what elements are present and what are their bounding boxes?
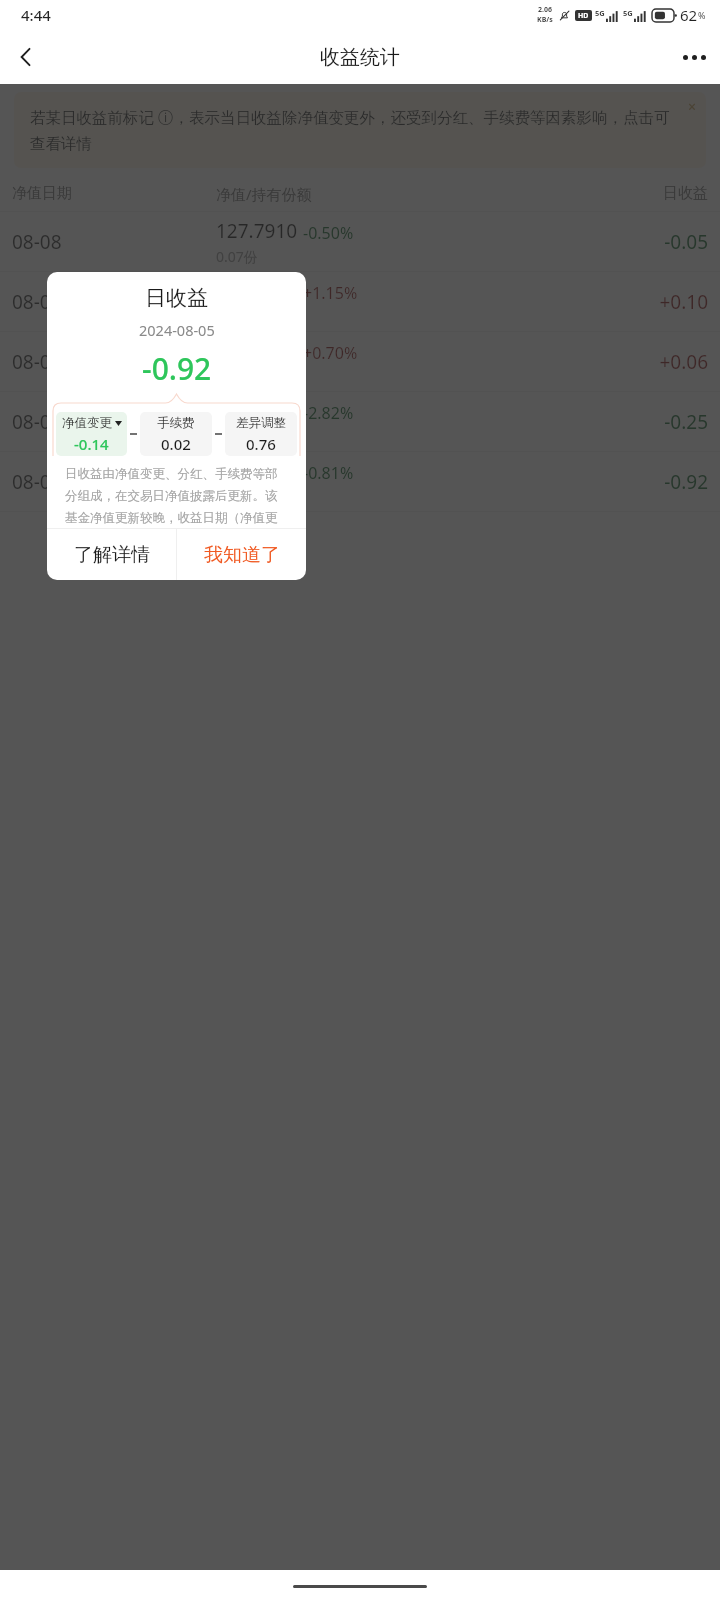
staticText: 净值/持有份额 xyxy=(216,184,503,204)
staticText: 日收益 xyxy=(145,285,208,311)
staticText: 日收益由净值变更、分红、手续费等部分组成，在交易日净值披露后更新。该基金净值更新… xyxy=(65,466,288,528)
staticText: -0.81% xyxy=(303,462,354,484)
staticText: % xyxy=(698,9,706,21)
button[interactable]: 08-02 xyxy=(0,452,720,511)
button[interactable]: 了解详情 xyxy=(47,529,176,580)
staticText: 若某日收益前标记 ⓘ，表示当日收益除净值变更外，还受到分红、手续费等因素影响，点… xyxy=(30,106,684,154)
staticText: 08-02 xyxy=(12,469,216,495)
staticText: 08-06 xyxy=(12,349,216,375)
staticText: 08-08 xyxy=(12,229,216,255)
button[interactable]: 08-07 xyxy=(0,272,720,331)
staticText: 0.07份 xyxy=(216,487,258,506)
staticText: 0.07份 xyxy=(216,247,258,266)
staticText: 净值日期 xyxy=(12,184,216,203)
staticText: 2.06 xyxy=(538,5,552,15)
staticText: 0.07份 xyxy=(216,427,258,446)
staticText: × xyxy=(688,97,697,116)
button[interactable]: Back xyxy=(0,31,52,83)
button[interactable]: 若某日收益前标记 ⓘ，表示当日收益除净值变更外，还受到分红、手续费等因素影响，点… xyxy=(14,92,706,168)
staticText: 日收益 xyxy=(503,184,708,203)
staticText: +0.06 xyxy=(503,349,708,375)
staticText: 了解详情 xyxy=(74,543,150,567)
staticText: -0.14 xyxy=(74,434,109,454)
staticText: 5G xyxy=(623,8,633,18)
staticText: -0.50% xyxy=(303,222,354,244)
button[interactable]: 差异调整 xyxy=(225,412,297,456)
staticText: -0.92 xyxy=(142,348,212,389)
staticText: +0.10 xyxy=(503,289,708,315)
staticText: 0.76 xyxy=(246,434,276,454)
staticText: -0.92 xyxy=(503,469,708,495)
staticText: 127.7910 xyxy=(216,218,298,244)
staticText: 净值变更 xyxy=(62,415,112,431)
staticText: +1.15% xyxy=(303,282,358,304)
staticText: -0.25 xyxy=(503,409,708,435)
staticText: 126.0934 xyxy=(216,398,298,424)
staticText: KB/s xyxy=(537,15,553,25)
staticText: 129.7476 xyxy=(216,458,298,484)
button[interactable]: 净值变更 xyxy=(56,412,127,456)
staticText: 08-07 xyxy=(12,289,216,315)
staticText: 手续费 xyxy=(157,415,195,431)
staticText: +0.70% xyxy=(303,342,358,364)
staticText: 5G xyxy=(595,8,605,18)
button[interactable]: 08-05 xyxy=(0,392,720,451)
button[interactable]: 08-08 xyxy=(0,212,720,271)
staticText: 0.02 xyxy=(161,434,191,454)
button[interactable]: 08-06 xyxy=(0,332,720,391)
staticText: 2024-08-05 xyxy=(139,320,215,340)
button[interactable]: 手续费 xyxy=(140,412,212,456)
staticText: 我知道了 xyxy=(204,543,280,567)
staticText: HD xyxy=(578,11,589,21)
staticText: -0.05 xyxy=(503,229,708,255)
staticText: 收益统计 xyxy=(320,45,400,70)
staticText: 08-05 xyxy=(12,409,216,435)
staticText: -2.82% xyxy=(303,402,354,424)
staticText: 差异调整 xyxy=(236,415,286,431)
button[interactable]: 我知道了 xyxy=(177,529,306,580)
staticText: 4:44 xyxy=(21,5,51,25)
button[interactable]: More options xyxy=(668,31,720,83)
staticText: 62 xyxy=(680,5,698,25)
button[interactable]: Close xyxy=(682,96,702,116)
